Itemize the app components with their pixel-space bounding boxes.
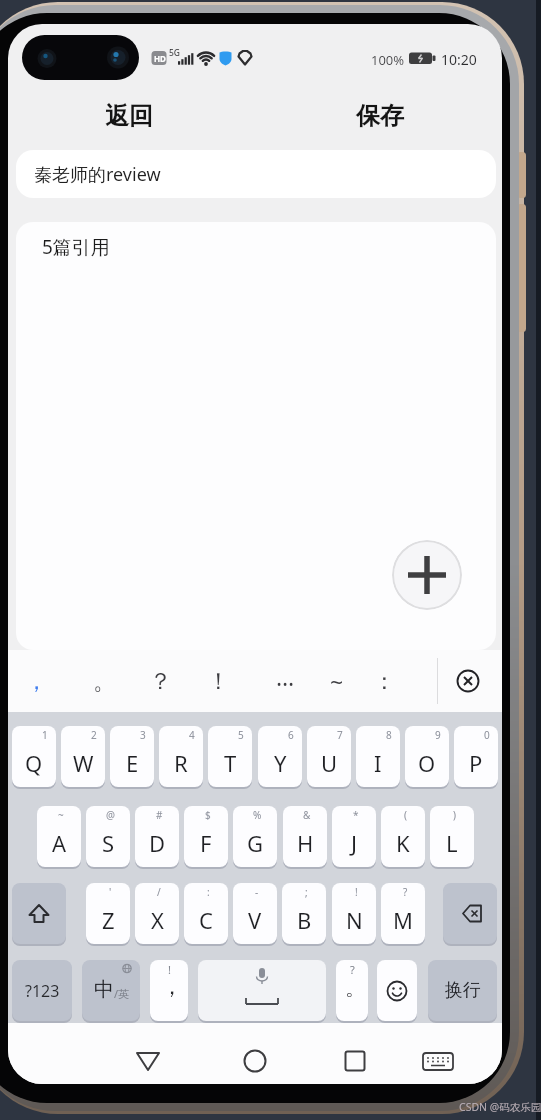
- button[interactable]: [12, 883, 66, 944]
- staticText: 100%: [371, 51, 405, 69]
- button[interactable]: ~: [320, 650, 354, 712]
- staticText: 1: [42, 728, 48, 742]
- staticText: M: [393, 905, 413, 935]
- button[interactable]: X: [135, 883, 179, 944]
- button[interactable]: E: [110, 726, 154, 787]
- staticText: ?123: [25, 980, 60, 1002]
- staticText: J: [351, 828, 358, 858]
- staticText: Q: [25, 748, 43, 778]
- staticText: &: [303, 808, 311, 822]
- staticText: W: [73, 748, 94, 778]
- staticText: ?: [403, 885, 408, 899]
- button[interactable]: ?123: [12, 960, 72, 1021]
- staticText: O: [418, 748, 436, 778]
- button[interactable]: [377, 960, 417, 1021]
- button[interactable]: L: [430, 806, 474, 867]
- button[interactable]: Q: [12, 726, 56, 787]
- staticText: D: [149, 828, 166, 858]
- button[interactable]: [237, 1043, 273, 1079]
- staticText: 8: [386, 728, 392, 742]
- button[interactable]: W: [61, 726, 105, 787]
- button[interactable]: !: [150, 960, 188, 1021]
- staticText: 保存: [356, 101, 404, 131]
- button[interactable]: Z: [86, 883, 130, 944]
- staticText: K: [396, 828, 410, 858]
- staticText: 6: [288, 728, 294, 742]
- staticText: Z: [102, 905, 115, 935]
- button[interactable]: 保存: [320, 96, 440, 136]
- staticText: ?: [350, 962, 355, 977]
- staticText: !: [168, 962, 171, 977]
- staticText: 5G: [169, 47, 181, 59]
- staticText: C: [199, 905, 213, 935]
- staticText: F: [200, 828, 212, 858]
- staticText: 0: [484, 728, 490, 742]
- staticText: P: [469, 748, 483, 778]
- button[interactable]: T: [208, 726, 252, 787]
- staticText: 4: [189, 728, 195, 742]
- button[interactable]: [420, 1043, 456, 1079]
- button[interactable]: J: [332, 806, 376, 867]
- staticText: …: [276, 661, 295, 692]
- staticText: ！: [207, 667, 230, 696]
- button[interactable]: M: [381, 883, 425, 944]
- button[interactable]: 中: [82, 960, 140, 1021]
- button[interactable]: [392, 540, 462, 610]
- button[interactable]: Y: [258, 726, 302, 787]
- button[interactable]: H: [283, 806, 327, 867]
- staticText: N: [346, 905, 363, 935]
- button[interactable]: …: [268, 650, 302, 712]
- staticText: U: [321, 748, 338, 778]
- staticText: ：: [373, 667, 396, 696]
- button[interactable]: 。: [87, 650, 121, 712]
- staticText: 返回: [105, 101, 153, 131]
- button[interactable]: ，: [19, 650, 53, 712]
- button[interactable]: P: [454, 726, 498, 787]
- button[interactable]: 5篇引用: [16, 222, 496, 650]
- button[interactable]: S: [86, 806, 130, 867]
- button[interactable]: U: [307, 726, 351, 787]
- staticText: 5篇引用: [42, 234, 110, 260]
- button[interactable]: ：: [367, 650, 401, 712]
- button[interactable]: B: [282, 883, 326, 944]
- button[interactable]: 返回: [69, 96, 189, 136]
- staticText: B: [297, 905, 312, 935]
- button[interactable]: I: [356, 726, 400, 787]
- button[interactable]: [452, 665, 484, 697]
- button[interactable]: O: [405, 726, 449, 787]
- button[interactable]: [443, 883, 497, 944]
- staticText: -: [255, 885, 259, 899]
- button[interactable]: ！: [201, 650, 235, 712]
- staticText: 3: [140, 728, 146, 742]
- staticText: HD: [154, 53, 166, 64]
- staticText: H: [297, 828, 314, 858]
- button[interactable]: F: [184, 806, 228, 867]
- button[interactable]: 换行: [428, 960, 497, 1021]
- button[interactable]: R: [159, 726, 203, 787]
- button[interactable]: ?: [336, 960, 368, 1021]
- button[interactable]: C: [184, 883, 228, 944]
- button[interactable]: N: [332, 883, 376, 944]
- button[interactable]: K: [381, 806, 425, 867]
- button[interactable]: 秦老师的review: [16, 150, 496, 198]
- button[interactable]: [198, 960, 326, 1021]
- staticText: @: [106, 808, 115, 822]
- staticText: ): [453, 808, 456, 822]
- button[interactable]: ？: [143, 650, 177, 712]
- staticText: R: [174, 748, 188, 778]
- staticText: ;: [305, 885, 308, 899]
- button[interactable]: V: [233, 883, 277, 944]
- staticText: ，: [25, 667, 48, 696]
- staticText: 9: [435, 728, 441, 742]
- button[interactable]: G: [233, 806, 277, 867]
- staticText: CSDN @码农乐园: [459, 1100, 541, 1114]
- button[interactable]: [337, 1043, 373, 1079]
- staticText: ~: [58, 808, 64, 822]
- staticText: ~: [330, 666, 344, 697]
- staticText: X: [151, 905, 164, 935]
- staticText: %: [253, 808, 262, 822]
- button[interactable]: D: [135, 806, 179, 867]
- button[interactable]: [130, 1043, 166, 1079]
- button[interactable]: A: [37, 806, 81, 867]
- staticText: 5: [238, 728, 244, 742]
